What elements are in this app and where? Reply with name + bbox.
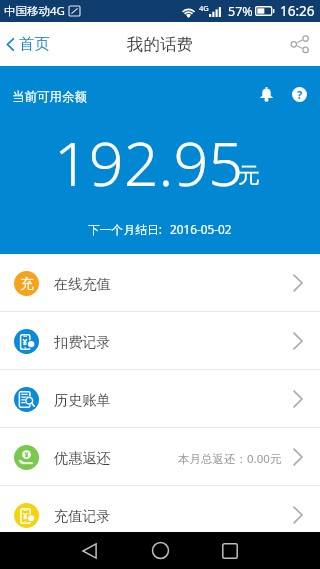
staticText: 充 bbox=[20, 275, 34, 292]
staticText: 优惠返还 bbox=[54, 449, 111, 467]
staticText: 历史账单 bbox=[54, 391, 111, 409]
staticText: 元 bbox=[238, 162, 260, 190]
button[interactable]: Recents bbox=[209, 532, 251, 569]
button[interactable]: 首页 bbox=[0, 26, 60, 62]
button[interactable]: 充值记录 bbox=[0, 486, 320, 544]
button[interactable]: Back bbox=[68, 532, 110, 569]
button[interactable]: 历史账单 bbox=[0, 370, 320, 428]
staticText: 下一个月结日: bbox=[88, 221, 162, 237]
button[interactable]: 充 bbox=[0, 254, 320, 312]
staticText: 192.95 bbox=[54, 121, 244, 204]
staticText: 57% bbox=[228, 3, 253, 20]
staticText: 4G bbox=[199, 3, 209, 13]
staticText: ? bbox=[297, 87, 303, 102]
staticText: 16:26 bbox=[280, 2, 315, 20]
staticText: 中国移动4G bbox=[4, 3, 65, 19]
staticText: 在线充值 bbox=[54, 275, 111, 293]
staticText: 本月总返还：0.00元 bbox=[178, 451, 282, 467]
staticText: 首页 bbox=[19, 34, 50, 54]
button[interactable]: Share bbox=[279, 23, 320, 65]
staticText: 当前可用余额 bbox=[12, 89, 87, 105]
staticText: 充值记录 bbox=[54, 507, 111, 525]
staticText: 扣费记录 bbox=[54, 333, 111, 351]
button[interactable]: Help bbox=[284, 82, 315, 107]
button[interactable]: 优惠返还 bbox=[0, 428, 320, 486]
staticText: 我的话费 bbox=[127, 34, 193, 55]
button[interactable]: 扣费记录 bbox=[0, 312, 320, 370]
button[interactable]: Home bbox=[139, 532, 181, 569]
button[interactable]: Notifications bbox=[251, 82, 278, 107]
staticText: 2016-05-02 bbox=[170, 221, 232, 237]
